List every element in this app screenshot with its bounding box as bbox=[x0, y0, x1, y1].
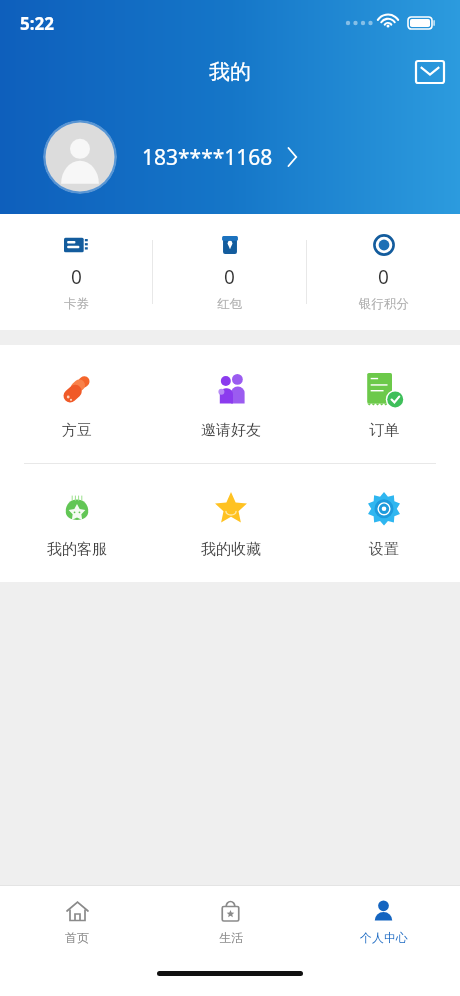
button[interactable]: 个人中心 bbox=[307, 886, 460, 958]
staticText: 设置 bbox=[369, 540, 399, 559]
button[interactable]: 方豆 bbox=[0, 345, 154, 463]
button[interactable]: 我的客服 bbox=[0, 464, 154, 582]
staticText: 我的客服 bbox=[47, 540, 107, 559]
button[interactable]: 首页 bbox=[0, 886, 154, 958]
button[interactable]: 0 bbox=[0, 214, 152, 330]
button[interactable]: 设置 bbox=[307, 464, 460, 582]
staticText: 订单 bbox=[369, 421, 399, 440]
staticText: 0 bbox=[378, 264, 389, 290]
staticText: 生活 bbox=[219, 930, 243, 945]
staticText: 邀请好友 bbox=[201, 421, 261, 440]
button[interactable]: 订单 bbox=[307, 345, 460, 463]
button[interactable]: 0 bbox=[153, 214, 306, 330]
staticText: 5:22 bbox=[20, 12, 54, 35]
staticText: 个人中心 bbox=[360, 930, 408, 945]
button[interactable]: 生活 bbox=[154, 886, 307, 958]
button[interactable]: 邀请好友 bbox=[154, 345, 307, 463]
staticText: 我的 bbox=[209, 59, 251, 85]
button[interactable]: Messages bbox=[400, 46, 460, 98]
staticText: 0 bbox=[71, 264, 82, 290]
staticText: 183****1168 bbox=[142, 143, 273, 172]
staticText: 0 bbox=[224, 264, 235, 290]
staticText: 银行积分 bbox=[359, 296, 409, 312]
staticText: 红包 bbox=[217, 296, 242, 312]
button[interactable]: 0 bbox=[307, 214, 460, 330]
button[interactable]: 183****1168 bbox=[0, 115, 460, 199]
staticText: 卡券 bbox=[64, 296, 89, 312]
staticText: 首页 bbox=[65, 930, 89, 945]
staticText: 方豆 bbox=[62, 421, 92, 440]
staticText: 我的收藏 bbox=[201, 540, 261, 559]
button[interactable]: 我的收藏 bbox=[154, 464, 307, 582]
